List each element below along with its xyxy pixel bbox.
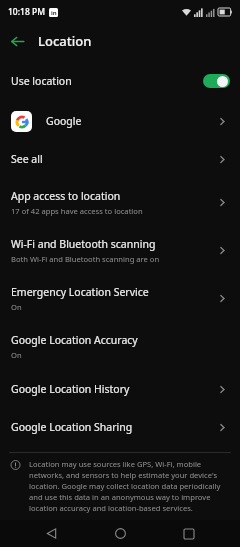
staticText: Emergency Location Service — [11, 285, 149, 299]
button[interactable]: Google Location Sharing — [0, 410, 240, 444]
staticText: in — [51, 9, 57, 17]
staticText: Google Location Sharing — [11, 420, 133, 434]
staticText: See all — [11, 152, 43, 166]
button[interactable]: Use location — [0, 66, 240, 96]
button[interactable]: App access to location — [0, 180, 240, 224]
button[interactable]: Back — [0, 24, 34, 58]
button[interactable]: Recent apps — [171, 520, 207, 547]
staticText: Wi-Fi and Bluetooth scanning — [11, 237, 156, 251]
staticText: Both Wi-Fi and Bluetooth scanning are on — [11, 254, 160, 264]
button[interactable]: Emergency Location Service — [0, 276, 240, 320]
button[interactable]: Google Location History — [0, 372, 240, 406]
staticText: Google — [46, 114, 82, 128]
staticText: Google Location History — [11, 382, 130, 396]
staticText: 10:18 PM — [8, 6, 45, 18]
button[interactable]: Home — [102, 520, 138, 547]
staticText: Google Location Accuracy — [11, 333, 138, 347]
staticText: Use location — [11, 74, 72, 88]
button[interactable]: Wi-Fi and Bluetooth scanning — [0, 228, 240, 272]
staticText: On — [11, 350, 22, 360]
button[interactable]: Back — [33, 520, 69, 547]
button[interactable]: See all — [0, 142, 240, 176]
staticText: Location may use sources like GPS, Wi-Fi… — [29, 459, 226, 513]
button[interactable]: Google — [0, 104, 240, 138]
staticText: 17 of 42 apps have access to location — [11, 206, 143, 216]
staticText: Location — [38, 32, 92, 50]
button[interactable]: Google Location Accuracy — [0, 324, 240, 368]
staticText: App access to location — [11, 189, 121, 203]
staticText: On — [11, 302, 22, 312]
